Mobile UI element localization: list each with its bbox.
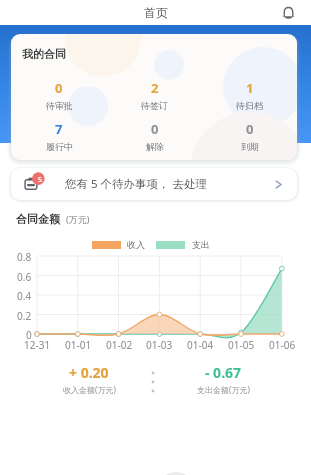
staticText: 0 [151, 120, 159, 138]
staticText: 7 [55, 120, 63, 138]
staticText: 您有 5 个待办事项， 去处理 [65, 176, 208, 192]
staticText: 1 [246, 79, 254, 97]
staticText: 0.2 [17, 309, 32, 323]
staticText: 0 [26, 328, 32, 342]
button[interactable]: 0 [11, 79, 107, 111]
staticText: 01-03 [146, 338, 173, 352]
staticText: 到期 [241, 141, 259, 152]
button[interactable]: Notifications [277, 2, 299, 24]
button[interactable]: 2 [107, 79, 202, 111]
staticText: - 0.67 [205, 363, 242, 382]
staticText: 0.4 [17, 289, 32, 303]
staticText: 待签订 [141, 100, 168, 111]
staticText: 01-01 [65, 338, 92, 352]
staticText: 履行中 [46, 141, 73, 152]
staticText: 12-31 [24, 338, 51, 352]
staticText: 待归档 [236, 100, 263, 111]
button[interactable]: 1 [202, 79, 297, 111]
staticText: 01-05 [228, 338, 255, 352]
staticText: 解除 [146, 141, 164, 152]
staticText: 首页 [144, 5, 168, 20]
button[interactable]: 5 [11, 168, 297, 200]
button[interactable]: 0 [202, 120, 297, 152]
staticText: 2 [151, 79, 159, 97]
staticText: 支出 [192, 239, 210, 250]
staticText: 我的合同 [22, 47, 66, 61]
staticText: 收入 [127, 239, 145, 250]
staticText: 待审批 [46, 100, 73, 111]
button[interactable]: 7 [11, 120, 107, 152]
staticText: 0 [55, 79, 63, 97]
staticText: 01-04 [187, 338, 214, 352]
staticText: (万元) [66, 213, 90, 225]
staticText: 01-02 [106, 338, 133, 352]
staticText: 0 [246, 120, 254, 138]
button[interactable]: 0 [107, 120, 202, 152]
staticText: 01-06 [269, 338, 296, 352]
staticText: 0.8 [17, 250, 32, 264]
button[interactable]: + 0.20 [19, 363, 159, 395]
staticText: + 0.20 [69, 363, 109, 382]
staticText: 0.6 [17, 270, 32, 284]
staticText: 5 [38, 175, 43, 185]
staticText: 合同金额 [16, 212, 60, 226]
staticText: 收入金额(万元) [63, 384, 116, 395]
button[interactable]: - 0.67 [153, 363, 293, 395]
staticText: 支出金额(万元) [197, 384, 250, 395]
